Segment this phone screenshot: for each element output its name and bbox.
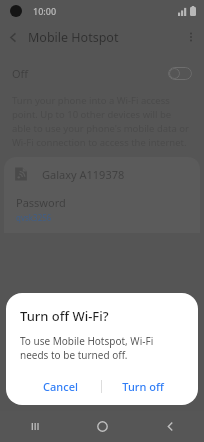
other: Mobile Hotspot switch, off	[168, 67, 192, 80]
staticText: Turn off	[122, 379, 164, 394]
staticText: Mobile Hotspot	[28, 29, 119, 46]
staticText: Cancel	[43, 379, 78, 394]
staticText: Turn off Wi-Fi?	[20, 307, 109, 325]
button[interactable]: Home	[68, 411, 136, 442]
staticText: qvsk3256	[16, 212, 52, 223]
staticText: 10:00	[33, 5, 57, 17]
button[interactable]: Back	[136, 411, 204, 442]
staticText: Galaxy A119378	[42, 167, 125, 182]
button[interactable]: Cancel	[20, 373, 101, 399]
staticText: Password	[16, 195, 66, 210]
button[interactable]: Turn off	[102, 373, 184, 399]
button[interactable]: Password	[4, 191, 200, 233]
button[interactable]: Back	[0, 24, 26, 50]
staticText: To use Mobile Hotspot, Wi-Fi needs to be…	[20, 334, 184, 362]
staticText: Off	[12, 66, 29, 81]
button[interactable]: Galaxy A119378	[4, 157, 200, 191]
button[interactable]: Recent apps	[0, 411, 68, 442]
